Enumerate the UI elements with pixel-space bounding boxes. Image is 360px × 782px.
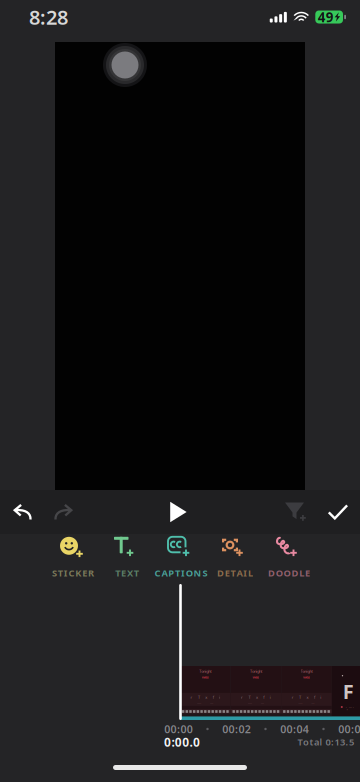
staticText: r [292,694,294,700]
staticText: i [320,694,321,700]
staticText: was [252,674,259,680]
staticText: T [299,694,301,700]
staticText: ---- [197,701,201,705]
staticText: Total 0:13.5 [297,736,354,748]
staticText: f [263,694,264,700]
staticText: ---- [298,701,302,705]
button[interactable]: DETAIL [208,537,262,583]
staticText: x [205,694,207,700]
staticText: i [270,694,271,700]
staticText: F [343,678,354,705]
button[interactable]: CAPTIONS [154,537,208,583]
button[interactable]: Add filter [275,490,317,534]
staticText: DETAIL [217,567,253,579]
staticText: --- [311,701,314,705]
staticText: 00:06 [338,722,360,736]
staticText: Tonight [300,668,312,674]
staticText: f [213,694,214,700]
staticText: i [219,694,220,700]
button[interactable]: DOODLE [262,537,316,583]
staticText: 00:04 [280,722,309,736]
staticText: was [202,674,209,680]
staticText: --- [210,701,213,705]
staticText: Tonight [250,668,262,674]
staticText: 8:28 [29,4,68,30]
staticText: ---- [248,701,252,705]
staticText: r [190,694,192,700]
button[interactable]: Play [154,490,202,534]
staticText: T [248,694,250,700]
button[interactable]: Done [317,490,359,534]
button[interactable]: STICKER [46,537,100,583]
staticText: --- [261,701,264,705]
button[interactable]: Redo [44,490,82,534]
staticText: TEXT [115,567,139,579]
staticText: T [198,694,200,700]
staticText: ·, ··· · [346,705,354,710]
staticText: 0:00.0 [164,734,200,750]
staticText: x [256,694,258,700]
staticText: 00:00 [164,722,193,736]
button[interactable]: Undo [2,490,44,534]
staticText: DOODLE [268,567,310,579]
staticText: f [314,694,315,700]
staticText: 00:02 [222,722,251,736]
button[interactable]: TEXT [100,537,154,583]
staticText: 49 [318,8,334,26]
staticText: STICKER [52,567,94,579]
staticText: Tonight [199,668,211,674]
staticText: x [306,694,308,700]
staticText: CAPTIONS [154,567,207,579]
staticText: r [241,694,243,700]
staticText: was [303,674,310,680]
